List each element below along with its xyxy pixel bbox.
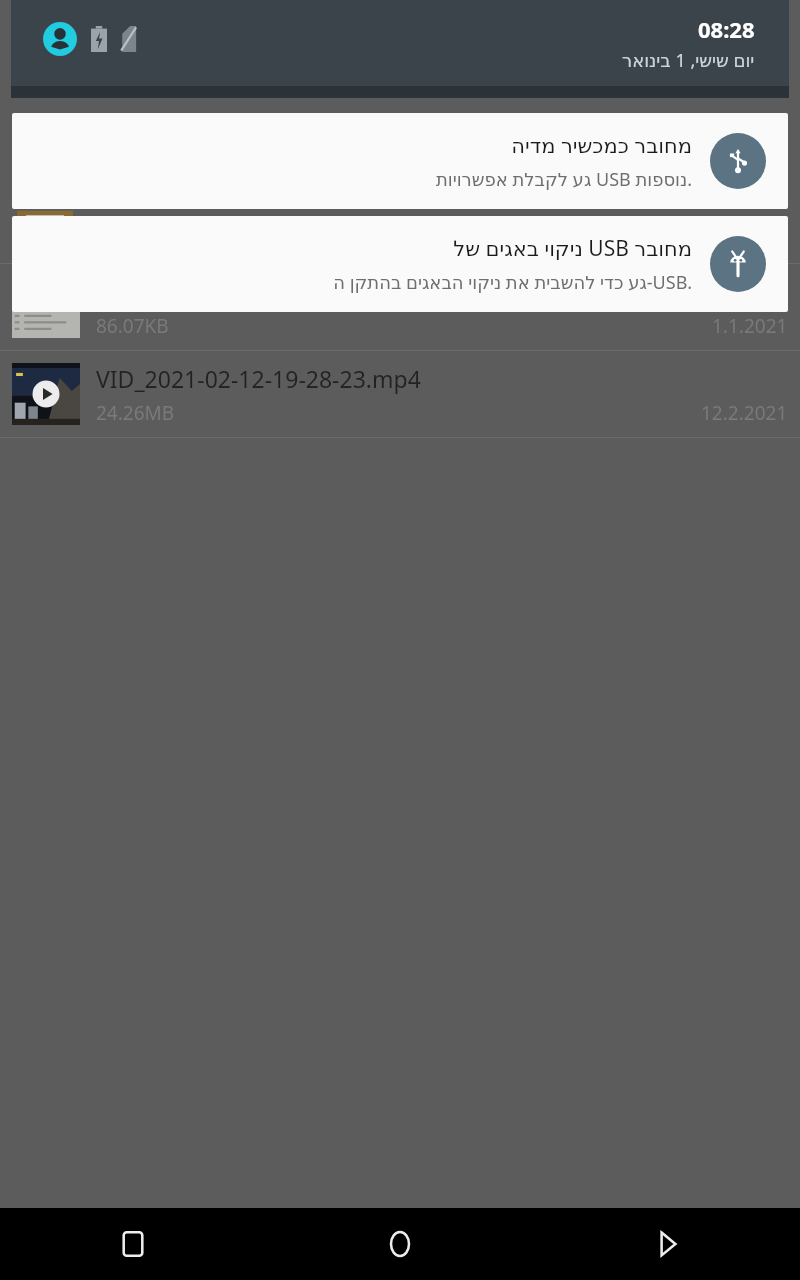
button[interactable]: Recent apps (0, 1208, 266, 1280)
staticText: גע לקבלת אפשרויות USB נוספות. (435, 167, 692, 192)
staticText: Screenshot_2021-01-01-08-22-08.png (96, 276, 497, 307)
button[interactable]: VID_2021-02-12-19-28-23.mp4 (0, 351, 800, 437)
staticText: יום שישי, 1 בינואר (622, 48, 755, 73)
staticText: 12.2.2021 (701, 400, 788, 426)
button[interactable]: 18 פריטים (0, 205, 800, 263)
staticText: 86.07KB (96, 313, 169, 339)
staticText: מחובר כמכשיר מדיה (511, 131, 692, 160)
staticText: 1.1.2021 (712, 313, 788, 339)
button[interactable]: Back (533, 1208, 800, 1280)
staticText: 08:28 (698, 14, 755, 44)
staticText: VID_2021-02-12-19-28-23.mp4 (96, 363, 421, 394)
button[interactable]: מחובר כמכשיר מדיה (12, 113, 788, 209)
button[interactable]: Screenshot_2021-01-01-08-22-08.png (0, 264, 800, 350)
staticText: 24.26MB (96, 400, 175, 426)
button[interactable]: ניקוי באגים של USB מחובר (12, 216, 788, 312)
staticText: גע כדי להשבית את ניקוי הבאגים בהתקן ה-US… (333, 270, 692, 295)
staticText: ניקוי באגים של USB מחובר (453, 234, 692, 263)
staticText: 1.1.2021 (710, 221, 786, 247)
button[interactable]: Home (266, 1208, 533, 1280)
